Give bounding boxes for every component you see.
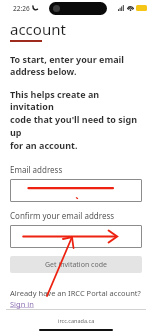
- staticText: ircc.canada.ca: [58, 317, 95, 324]
- button[interactable]: Already have an IRCC Portal account? Sig…: [10, 288, 144, 309]
- staticText: This helps create an invitation code tha…: [10, 88, 144, 152]
- staticText: 22:26: [13, 4, 30, 13]
- staticText: Get invitation code: [45, 260, 107, 270]
- staticText: account: [10, 19, 66, 39]
- staticText: Confirm your email address: [10, 210, 115, 221]
- button[interactable]: [10, 225, 142, 248]
- button[interactable]: Get invitation code: [10, 256, 142, 273]
- staticText: To start, enter your email address below…: [10, 53, 124, 78]
- staticText: Email address: [10, 164, 63, 175]
- button[interactable]: [10, 179, 142, 202]
